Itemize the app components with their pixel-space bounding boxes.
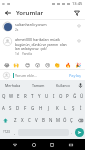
button[interactable]: F <box>21 102 29 114</box>
button[interactable]: Send <box>75 128 84 137</box>
button[interactable]: 😍 <box>24 61 31 68</box>
button[interactable]: Recents <box>47 140 56 149</box>
staticText: sultanhanliı yorum <box>15 22 47 27</box>
button[interactable]: T <box>29 90 36 102</box>
staticText: M <box>56 117 60 123</box>
button[interactable]: 🔥 <box>65 61 72 68</box>
button[interactable]: ahmet000 harikaları müzik <box>0 35 85 58</box>
button[interactable]: Tamam <box>26 80 51 90</box>
staticText: K <box>56 105 59 111</box>
button[interactable]: P <box>64 90 71 102</box>
staticText: Ü <box>80 93 84 99</box>
button[interactable]: Ç <box>68 114 75 126</box>
button[interactable]: B <box>40 114 47 126</box>
button[interactable]: K <box>53 102 61 114</box>
staticText: A <box>2 105 5 111</box>
button[interactable]: , <box>12 126 18 138</box>
button[interactable]: Yorum ekle... <box>13 73 68 78</box>
staticText: T <box>31 93 34 99</box>
staticText: ?123 <box>3 130 10 134</box>
button[interactable]: M <box>54 114 61 126</box>
button[interactable]: Keyboard <box>66 140 75 149</box>
staticText: Kullanıcı <box>56 83 71 88</box>
button[interactable]: E <box>15 90 22 102</box>
staticText: H <box>39 105 43 111</box>
button[interactable]: H <box>37 102 45 114</box>
button[interactable]: L <box>61 102 69 114</box>
button[interactable]: Ğ <box>71 90 78 102</box>
staticText: Paylaş <box>69 73 81 78</box>
staticText: S <box>9 105 12 111</box>
button[interactable]: N <box>47 114 54 126</box>
button[interactable]: D <box>14 102 21 114</box>
staticText: 😢 <box>45 62 51 68</box>
button[interactable]: Back <box>10 140 19 149</box>
button[interactable]: O <box>57 90 64 102</box>
button[interactable]: Back <box>3 8 13 18</box>
button[interactable]: Z <box>11 114 19 126</box>
button[interactable]: 🎉 <box>75 61 82 68</box>
staticText: 😮 <box>35 62 41 68</box>
button[interactable]: S <box>7 102 14 114</box>
staticText: R <box>24 93 27 99</box>
staticText: P <box>66 93 69 99</box>
staticText: Ö <box>63 117 67 123</box>
button[interactable]: Ü <box>78 90 85 102</box>
button[interactable]: Backspace <box>75 114 85 126</box>
button[interactable]: 😂 <box>3 61 10 68</box>
staticText: V <box>35 117 38 123</box>
staticText: W <box>9 93 14 99</box>
button[interactable]: 🙌 <box>13 61 20 68</box>
button[interactable]: Like <box>75 37 82 44</box>
staticText: N <box>49 117 53 123</box>
button[interactable]: V <box>33 114 40 126</box>
staticText: ahmet000 harikaları müzik <box>15 37 61 42</box>
button[interactable]: C <box>26 114 33 126</box>
button[interactable]: Merhaba <box>0 80 26 90</box>
staticText: 👏 <box>54 62 61 68</box>
button[interactable]: I <box>50 90 57 102</box>
button[interactable]: A <box>0 102 7 114</box>
button[interactable]: Voice input <box>76 80 85 90</box>
staticText: Z <box>14 117 17 123</box>
button[interactable]: 😮 <box>34 61 41 68</box>
button[interactable]: Shift <box>0 114 11 126</box>
button[interactable]: 👏 <box>54 61 61 68</box>
staticText: O <box>59 93 63 99</box>
staticText: 😂 <box>4 62 10 68</box>
staticText: E <box>17 93 20 99</box>
staticText: C <box>28 117 31 123</box>
button[interactable]: Like <box>75 22 82 29</box>
button[interactable]: R <box>22 90 29 102</box>
button[interactable]: Ö <box>61 114 68 126</box>
button[interactable]: Paylaş <box>68 72 82 79</box>
staticText: 13:45 <box>72 1 83 6</box>
button[interactable]: . <box>69 126 75 138</box>
button[interactable]: ?123 <box>1 126 12 138</box>
button[interactable]: Home <box>29 140 38 149</box>
button[interactable]: Send <box>72 8 82 18</box>
staticText: bugünün, dünkü ve yarının olan ları anla… <box>15 42 67 51</box>
staticText: U <box>45 93 49 99</box>
button[interactable]: Y <box>36 90 43 102</box>
button[interactable]: W <box>8 90 15 102</box>
button[interactable]: X <box>19 114 26 126</box>
button[interactable]: 😢 <box>44 61 51 68</box>
button[interactable]: Ş <box>69 102 77 114</box>
staticText: D <box>16 105 20 111</box>
button[interactable]: Q <box>0 90 8 102</box>
staticText: Y <box>38 93 41 99</box>
button[interactable]: G <box>29 102 37 114</box>
staticText: L <box>64 105 67 111</box>
button[interactable]: Kullanıcı <box>51 80 76 90</box>
staticText: . <box>71 130 73 135</box>
button[interactable]: İ <box>77 102 85 114</box>
staticText: İ <box>80 105 82 111</box>
staticText: 🎉 <box>75 62 82 68</box>
button[interactable]: J <box>45 102 53 114</box>
staticText: 😍 <box>25 62 31 68</box>
staticText: Yorumlar <box>16 9 44 17</box>
button[interactable]: U <box>43 90 50 102</box>
button[interactable]: sultanhanliı yorum <box>0 20 85 34</box>
